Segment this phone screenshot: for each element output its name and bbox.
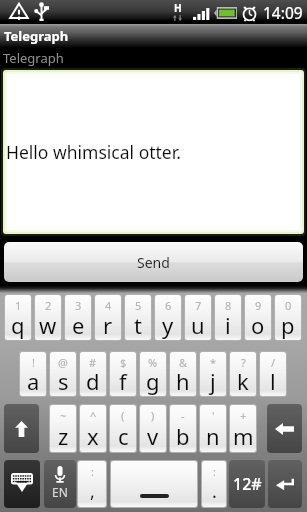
- button[interactable]: (: [110, 405, 136, 452]
- staticText: r: [103, 310, 113, 340]
- staticText: +: [240, 408, 247, 423]
- staticText: /: [271, 355, 276, 370]
- button[interactable]: 2: [35, 295, 61, 340]
- staticText: g: [146, 366, 160, 396]
- staticText: t: [134, 310, 142, 340]
- staticText: w: [39, 310, 57, 340]
- button[interactable]: ): [140, 405, 166, 452]
- button[interactable]: ^: [80, 405, 106, 452]
- button[interactable]: 7: [185, 295, 211, 340]
- button[interactable]: Voice input: [44, 460, 76, 508]
- staticText: h: [176, 366, 190, 396]
- staticText: EN: [52, 484, 68, 500]
- staticText: f: [119, 366, 127, 396]
- staticText: -: [181, 408, 185, 423]
- staticText: e: [72, 310, 85, 340]
- staticText: x: [87, 421, 99, 451]
- staticText: ': [212, 408, 215, 423]
- staticText: .: [212, 479, 217, 504]
- staticText: Telegraph: [4, 27, 69, 45]
- button[interactable]: +: [230, 405, 256, 452]
- button[interactable]: 8: [215, 295, 241, 340]
- staticText: :: [213, 464, 216, 479]
- staticText: ): [151, 408, 155, 423]
- button[interactable]: $: [110, 352, 136, 396]
- staticText: d: [86, 366, 100, 396]
- staticText: n: [206, 421, 220, 451]
- button[interactable]: -: [170, 405, 196, 452]
- staticText: o: [251, 310, 265, 340]
- staticText: 5: [135, 298, 142, 313]
- button[interactable]: 1: [5, 295, 31, 340]
- staticText: 8: [225, 298, 232, 313]
- button[interactable]: Send: [4, 242, 303, 282]
- staticText: c: [118, 421, 129, 451]
- button[interactable]: :: [202, 461, 226, 507]
- staticText: v: [147, 421, 159, 451]
- button[interactable]: 3: [65, 295, 91, 340]
- staticText: @: [58, 355, 68, 370]
- button[interactable]: &: [170, 352, 196, 396]
- staticText: 1: [15, 298, 22, 313]
- staticText: 14:09: [263, 2, 303, 23]
- button[interactable]: 4: [95, 295, 121, 340]
- button[interactable]: Backspace: [267, 404, 302, 453]
- button[interactable]: /: [260, 352, 286, 396]
- button[interactable]: 0: [275, 295, 301, 340]
- staticText: &: [179, 355, 188, 370]
- staticText: ?: [241, 355, 246, 370]
- staticText: Telegraph: [3, 49, 64, 67]
- staticText: 3: [75, 298, 82, 313]
- staticText: 9: [255, 298, 262, 313]
- button[interactable]: @: [50, 352, 76, 396]
- staticText: H: [174, 1, 182, 15]
- staticText: k: [237, 366, 249, 396]
- button[interactable]: 6: [155, 295, 181, 340]
- staticText: 6: [165, 298, 172, 313]
- staticText: s: [58, 366, 69, 396]
- button[interactable]: ?: [230, 352, 256, 396]
- staticText: ~: [60, 408, 67, 423]
- staticText: ,: [90, 479, 95, 504]
- button[interactable]: *: [200, 352, 226, 396]
- button[interactable]: ': [200, 405, 226, 452]
- staticText: z: [58, 421, 69, 451]
- button[interactable]: Hello whimsical otter.: [7, 74, 300, 230]
- staticText: %: [148, 355, 158, 370]
- staticText: :: [91, 464, 94, 479]
- button[interactable]: Enter: [268, 460, 302, 508]
- staticText: ^: [90, 408, 97, 423]
- button[interactable]: #: [80, 352, 106, 396]
- button[interactable]: Symbols: [229, 460, 265, 508]
- staticText: 12#: [233, 473, 262, 495]
- staticText: q: [11, 310, 25, 340]
- staticText: y: [162, 310, 174, 340]
- staticText: Hello whimsical otter.: [6, 140, 181, 164]
- staticText: $: [120, 355, 127, 370]
- button[interactable]: ~: [50, 405, 76, 452]
- button[interactable]: 5: [125, 295, 151, 340]
- button[interactable]: Hide keyboard: [4, 460, 40, 508]
- staticText: 0: [285, 298, 292, 313]
- button[interactable]: :: [78, 461, 106, 507]
- staticText: 2: [45, 298, 52, 313]
- staticText: j: [210, 366, 216, 396]
- staticText: u: [191, 310, 205, 340]
- button[interactable]: %: [140, 352, 166, 396]
- button[interactable]: Shift: [4, 404, 39, 453]
- staticText: b: [176, 421, 190, 451]
- staticText: a: [27, 366, 40, 396]
- button[interactable]: Space: [111, 461, 197, 507]
- button[interactable]: 9: [245, 295, 271, 340]
- staticText: !: [32, 355, 35, 370]
- staticText: 7: [195, 298, 202, 313]
- staticText: 4: [105, 298, 112, 313]
- button[interactable]: !: [20, 352, 46, 396]
- staticText: #: [89, 355, 97, 370]
- staticText: *: [210, 355, 217, 370]
- staticText: l: [270, 366, 276, 396]
- staticText: p: [281, 310, 295, 340]
- staticText: i: [225, 310, 231, 340]
- staticText: Send: [137, 253, 170, 272]
- staticText: m: [233, 421, 254, 451]
